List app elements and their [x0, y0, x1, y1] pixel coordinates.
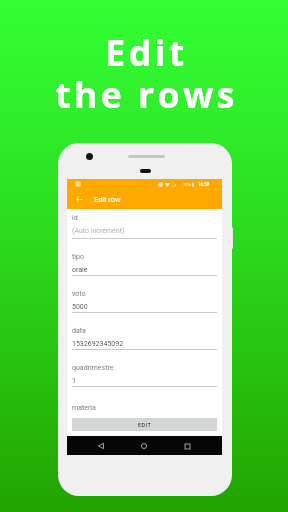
staticText: materia — [72, 404, 96, 412]
button[interactable]: Back — [95, 440, 107, 452]
button[interactable]: Back — [72, 192, 86, 206]
staticText: voto — [72, 290, 86, 298]
staticText: Edit row — [94, 195, 121, 204]
staticText: 1 — [72, 377, 76, 385]
staticText: data — [72, 327, 86, 335]
staticText: 5000 — [72, 303, 88, 311]
staticText: quadrimestre — [72, 364, 114, 372]
staticText: 1532692345092 — [72, 340, 124, 348]
button[interactable]: EDIT — [72, 418, 217, 431]
staticText: 77% — [183, 182, 191, 187]
button[interactable]: Home — [138, 440, 150, 452]
button[interactable]: Recent apps — [181, 440, 193, 452]
staticText: the rows — [55, 70, 238, 118]
staticText: id — [72, 214, 78, 222]
staticText: EDIT — [138, 422, 152, 428]
staticText: orale — [72, 266, 88, 274]
staticText: Edit — [105, 28, 188, 76]
button[interactable]: voto — [72, 276, 217, 313]
button[interactable]: tipo — [72, 239, 217, 276]
staticText: (Auto increment) — [72, 227, 125, 235]
button[interactable]: id — [72, 209, 217, 239]
staticText: tipo — [72, 253, 84, 261]
button[interactable]: data — [72, 313, 217, 350]
button[interactable]: Back — [67, 189, 222, 209]
button[interactable]: quadrimestre — [72, 350, 217, 387]
staticText: 16:58 — [198, 182, 210, 187]
